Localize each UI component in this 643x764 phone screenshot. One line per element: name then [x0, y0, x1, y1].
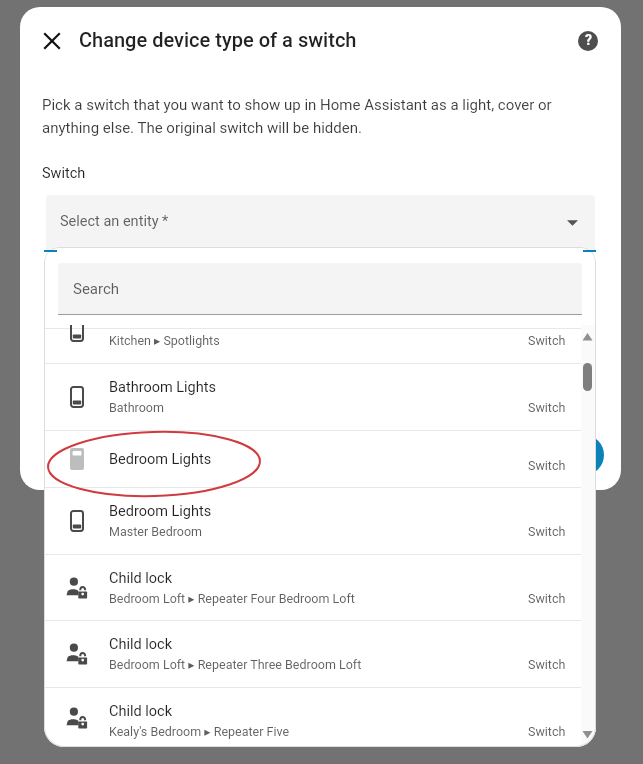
button[interactable]: Search — [58, 263, 582, 315]
staticText: Switch — [528, 400, 566, 415]
staticText: Child lock — [109, 703, 172, 720]
staticText: Switch — [528, 657, 566, 672]
staticText: Bathroom — [109, 400, 164, 415]
button[interactable]: Kitchen ▸ Spotlights — [44, 329, 581, 363]
staticText: Switch — [528, 333, 566, 348]
button[interactable]: Child lock — [44, 555, 581, 620]
staticText: Switch — [528, 591, 566, 606]
staticText: Master Bedroom — [109, 524, 203, 539]
button[interactable]: Bedroom Lights — [44, 488, 581, 554]
staticText: Child lock — [109, 570, 172, 587]
staticText: ? — [585, 32, 592, 48]
staticText: Select an entity * — [60, 213, 169, 230]
button[interactable]: Help — [568, 21, 608, 61]
staticText: Switch — [42, 165, 86, 182]
staticText: Kitchen ▸ Spotlights — [109, 333, 220, 348]
button[interactable]: Bedroom Lights — [44, 431, 581, 487]
button[interactable]: Child lock — [44, 621, 581, 687]
button[interactable]: Select an entity * — [46, 195, 595, 252]
staticText: Switch — [528, 724, 566, 739]
staticText: Bedroom Loft ▸ Repeater Four Bedroom Lof… — [109, 591, 355, 606]
staticText: Bedroom Loft ▸ Repeater Three Bedroom Lo… — [109, 657, 362, 672]
staticText: Switch — [528, 458, 566, 473]
button[interactable]: Bathroom Lights — [44, 364, 581, 430]
button[interactable]: Child lock — [44, 688, 581, 747]
staticText: Kealy's Bedroom ▸ Repeater Five — [109, 724, 290, 739]
staticText: Change device type of a switch — [79, 28, 357, 51]
staticText: Bathroom Lights — [109, 379, 216, 396]
button[interactable]: Close — [32, 21, 72, 61]
staticText: Bedroom Lights — [109, 451, 212, 468]
button[interactable]: Add — [564, 435, 604, 475]
staticText: Pick a switch that you want to show up i… — [42, 96, 562, 137]
staticText: Switch — [528, 524, 566, 539]
staticText: Bedroom Lights — [109, 503, 212, 520]
staticText: Search — [73, 280, 120, 298]
staticText: Child lock — [109, 636, 172, 653]
